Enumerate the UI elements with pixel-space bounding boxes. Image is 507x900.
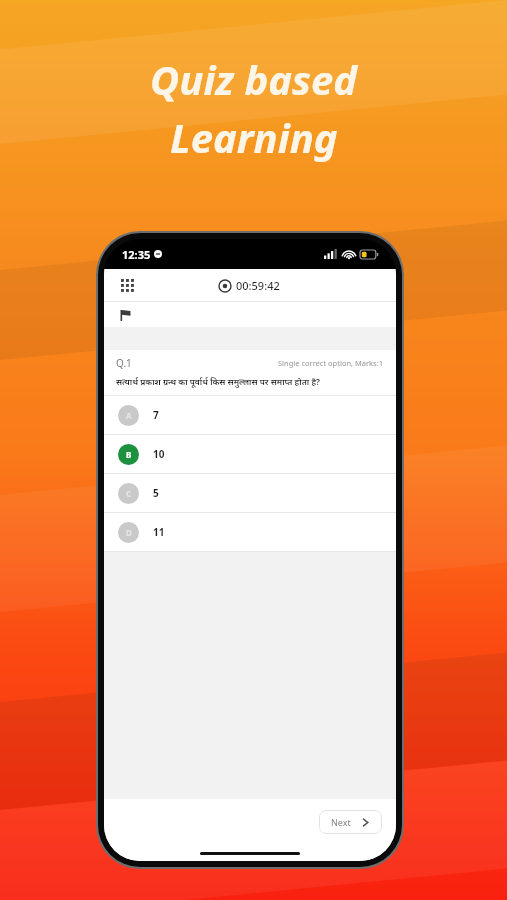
staticText: Single correct option, Marks:1 — [278, 358, 384, 368]
button[interactable]: C — [104, 474, 396, 512]
button[interactable]: B — [104, 435, 396, 473]
staticText: 11 — [153, 525, 165, 539]
staticText: Quiz based — [150, 52, 358, 106]
button[interactable]: Next — [319, 810, 382, 834]
button[interactable]: Flag question — [116, 306, 134, 324]
staticText: B — [126, 449, 132, 460]
staticText: C — [126, 488, 132, 499]
staticText: 10 — [153, 447, 165, 461]
staticText: Q.1 — [116, 356, 132, 370]
staticText: Learning — [170, 110, 338, 164]
staticText: 5 — [153, 486, 159, 500]
staticText: 12:35 — [122, 247, 151, 262]
staticText: 7 — [153, 408, 159, 422]
button[interactable]: A — [104, 396, 396, 434]
staticText: Next — [331, 816, 351, 828]
button[interactable]: Question palette — [116, 274, 138, 296]
staticText: सत्यार्थ प्रकाश ग्रन्थ का पूर्वार्ध किस … — [116, 376, 321, 388]
staticText: D — [126, 527, 132, 538]
staticText: A — [126, 410, 132, 421]
staticText: 00:59:42 — [236, 278, 280, 293]
button[interactable]: D — [104, 513, 396, 551]
